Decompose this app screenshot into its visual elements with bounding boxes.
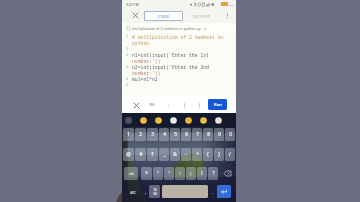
- staticText: -: [185, 151, 187, 158]
- button[interactable]: Emoji: [200, 117, 207, 124]
- button[interactable]: Hide toolbar: [131, 100, 141, 110]
- button[interactable]: /: [225, 148, 235, 161]
- staticText: 40%: [229, 3, 234, 6]
- button[interactable]: ": [153, 167, 163, 180]
- button[interactable]: :: [164, 100, 174, 110]
- staticText: 9: [218, 131, 221, 138]
- button[interactable]: =\<: [124, 167, 138, 180]
- button[interactable]: 6: [181, 128, 191, 141]
- button[interactable]: ABC: [129, 185, 137, 198]
- staticText: 9:02 PM: [126, 2, 139, 7]
- button[interactable]: Emoji: [155, 117, 162, 124]
- staticText: n2=int(input('Enter the 2nd: [132, 64, 209, 70]
- staticText: 2: [126, 46, 129, 51]
- staticText: ABC: [130, 190, 137, 194]
- button[interactable]: Backspace: [221, 167, 234, 180]
- staticText: 6: [126, 82, 129, 87]
- button[interactable]: ': [164, 167, 174, 180]
- staticText: 1: [127, 131, 130, 138]
- staticText: /: [229, 151, 231, 158]
- staticText: (: [207, 151, 209, 158]
- staticText: 5: [174, 131, 177, 138]
- button[interactable]: 5: [170, 128, 180, 141]
- button[interactable]: ): [214, 148, 224, 161]
- button[interactable]: More options: [222, 10, 233, 21]
- button[interactable]: (: [203, 148, 213, 161]
- staticText: Run: [214, 102, 222, 108]
- staticText: #: [139, 151, 143, 158]
- staticText: @: [126, 151, 131, 158]
- staticText: 1: [126, 34, 129, 39]
- button[interactable]: &: [170, 148, 180, 161]
- button[interactable]: Emoji: [215, 117, 222, 124]
- button[interactable]: CODE: [144, 11, 183, 21]
- staticText: .: [212, 189, 214, 195]
- button[interactable]: 4: [159, 128, 169, 141]
- staticText: python: [132, 40, 150, 46]
- button[interactable]: _: [159, 148, 169, 161]
- staticText: 3: [151, 131, 154, 138]
- staticText: :: [179, 170, 181, 177]
- staticText: OUTPUT: [193, 14, 211, 19]
- staticText: ): [218, 151, 220, 158]
- button[interactable]: :: [175, 167, 185, 180]
- staticText: ;: [190, 170, 192, 177]
- button[interactable]: 9: [214, 128, 224, 141]
- button[interactable]: Enter: [217, 185, 231, 198]
- staticText: ': [168, 170, 170, 177]
- staticText: 6: [185, 131, 188, 138]
- button[interactable]: Numbers: [149, 185, 160, 198]
- staticText: 5: [126, 76, 129, 81]
- button[interactable]: 7: [192, 128, 202, 141]
- staticText: 3: [126, 52, 129, 57]
- staticText: number:')): [132, 70, 161, 76]
- button[interactable]: |: [179, 100, 189, 110]
- button[interactable]: 2: [135, 128, 146, 141]
- staticText: ,: [145, 189, 147, 195]
- button[interactable]: Emoji keyboard: [125, 117, 132, 124]
- staticText: 8: [207, 131, 210, 138]
- button[interactable]: 8: [203, 128, 213, 141]
- staticText: number:')): [132, 58, 161, 64]
- button[interactable]: +: [192, 148, 202, 161]
- button[interactable]: TAB: [147, 100, 157, 110]
- button[interactable]: Emoji: [185, 117, 192, 124]
- button[interactable]: |: [194, 100, 204, 110]
- button[interactable]: Close file: [202, 26, 207, 31]
- staticText: =\<: [129, 172, 134, 176]
- staticText: 7: [196, 131, 199, 138]
- button[interactable]: Space: [162, 185, 208, 198]
- button[interactable]: @: [123, 148, 134, 161]
- button[interactable]: Run: [208, 99, 227, 110]
- button[interactable]: -: [181, 148, 191, 161]
- staticText: *: [145, 170, 148, 177]
- button[interactable]: Emoji: [140, 117, 147, 124]
- staticText: ?: [212, 170, 215, 177]
- staticText: 4: [163, 131, 166, 138]
- staticText: ₹: [151, 151, 154, 158]
- staticText: ": [157, 170, 159, 177]
- button[interactable]: 3: [147, 128, 158, 141]
- staticText: |: [183, 102, 186, 108]
- staticText: +: [196, 151, 199, 158]
- staticText: &: [173, 151, 177, 158]
- staticText: 0: [229, 131, 232, 138]
- button[interactable]: .: [210, 185, 215, 198]
- staticText: 4: [126, 64, 129, 69]
- button[interactable]: ₹: [147, 148, 158, 161]
- staticText: CODE: [158, 14, 170, 19]
- button[interactable]: Close: [130, 10, 141, 21]
- button[interactable]: *: [141, 167, 152, 180]
- staticText: _: [163, 151, 166, 158]
- button[interactable]: OUTPUT: [183, 11, 221, 21]
- button[interactable]: !: [197, 167, 207, 180]
- button[interactable]: 0: [225, 128, 235, 141]
- button[interactable]: #: [135, 148, 146, 161]
- button[interactable]: Emoji: [170, 117, 177, 124]
- button[interactable]: ?: [208, 167, 218, 180]
- staticText: |: [198, 102, 201, 108]
- staticText: !: [201, 170, 203, 177]
- button[interactable]: 1: [123, 128, 134, 141]
- button[interactable]: ;: [186, 167, 196, 180]
- button[interactable]: ,: [144, 185, 148, 198]
